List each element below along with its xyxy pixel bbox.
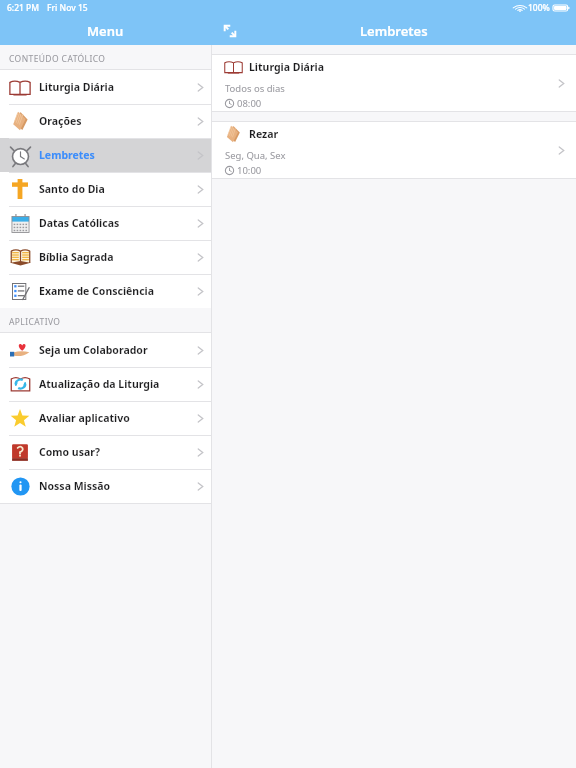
staticText: Liturgia Diária — [39, 80, 115, 94]
button[interactable]: Como usar? — [0, 435, 211, 469]
button[interactable]: Exame de Consciência — [0, 274, 211, 308]
button[interactable]: Rezar — [212, 122, 576, 178]
staticText: Lembretes — [39, 148, 95, 162]
button[interactable]: Liturgia Diária — [212, 55, 576, 111]
staticText: Santo do Dia — [39, 182, 105, 196]
staticText: 6:21 PM — [7, 2, 40, 14]
staticText: Menu — [87, 22, 124, 40]
button[interactable]: Nossa Missão — [0, 469, 211, 503]
button[interactable]: Atualização da Liturgia — [0, 367, 211, 401]
staticText: CONTEÚDO CATÓLICO — [9, 53, 106, 65]
button[interactable]: Santo do Dia — [0, 172, 211, 206]
staticText: Liturgia Diária — [249, 60, 325, 74]
staticText: Avaliar aplicativo — [39, 411, 130, 425]
button[interactable]: Avaliar aplicativo — [0, 401, 211, 435]
staticText: Seja um Colaborador — [39, 343, 148, 357]
staticText: Todos os dias — [225, 82, 285, 95]
staticText: Fri Nov 15 — [47, 2, 88, 14]
staticText: Atualização da Liturgia — [39, 377, 160, 391]
button[interactable]: Datas Católicas — [0, 206, 211, 240]
staticText: 10:00 — [237, 164, 262, 177]
button[interactable]: Orações — [0, 104, 211, 138]
button[interactable]: Liturgia Diária — [0, 70, 211, 104]
staticText: Nossa Missão — [39, 479, 111, 493]
staticText: APLICATIVO — [9, 316, 61, 328]
button[interactable]: Lembretes — [0, 138, 211, 172]
staticText: Lembretes — [360, 22, 428, 40]
staticText: Exame de Consciência — [39, 284, 155, 298]
staticText: Orações — [39, 114, 82, 128]
staticText: Bíblia Sagrada — [39, 250, 114, 264]
button[interactable]: Seja um Colaborador — [0, 333, 211, 367]
button[interactable]: Collapse — [218, 19, 242, 43]
button[interactable]: Bíblia Sagrada — [0, 240, 211, 274]
staticText: Rezar — [249, 127, 279, 141]
staticText: Como usar? — [39, 445, 100, 459]
staticText: Datas Católicas — [39, 216, 120, 230]
staticText: Seg, Qua, Sex — [225, 149, 286, 162]
staticText: 100% — [528, 2, 550, 14]
staticText: 08:00 — [237, 97, 262, 110]
